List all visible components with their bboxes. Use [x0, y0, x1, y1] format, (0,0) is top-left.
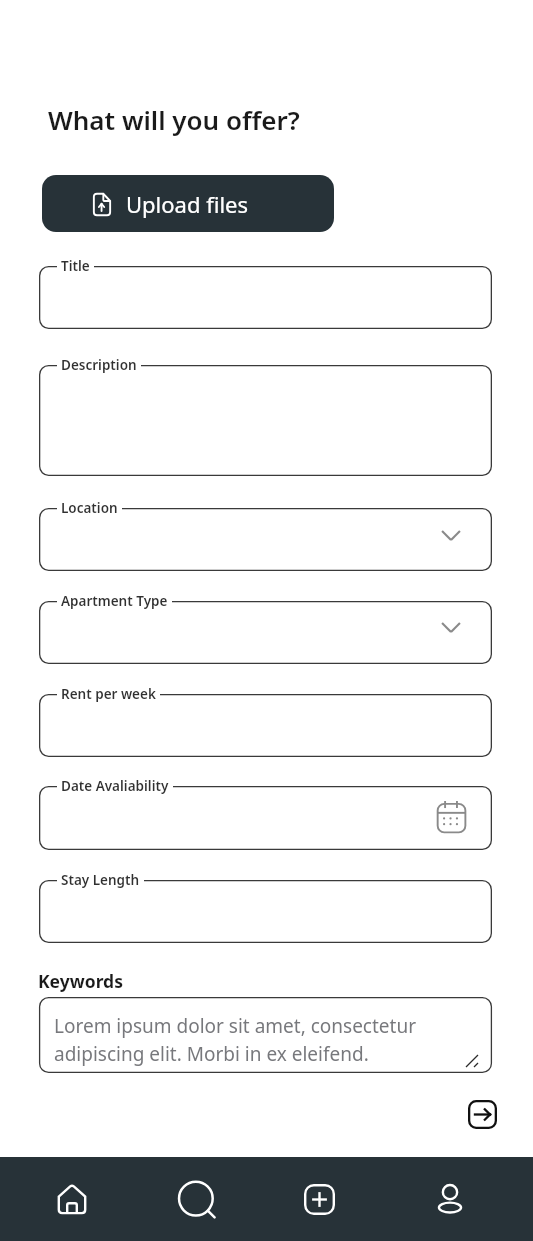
staticText: Upload files	[126, 189, 249, 219]
button[interactable]: Next	[468, 1100, 497, 1129]
button[interactable]: Add	[256, 1157, 382, 1241]
staticText: Apartment Type	[61, 592, 168, 610]
staticText: Lorem ipsum dolor sit amet, consectetur …	[54, 1013, 416, 1066]
staticText: What will you offer?	[48, 102, 300, 137]
staticText: Location	[61, 499, 118, 517]
staticText: Title	[61, 257, 90, 275]
staticText: Rent per week	[61, 685, 156, 703]
button[interactable]: Upload files	[42, 175, 334, 232]
staticText: Date Avaliability	[61, 777, 169, 795]
staticText: Stay Length	[61, 871, 140, 889]
button[interactable]: Profile	[387, 1157, 513, 1241]
button[interactable]: Search	[134, 1157, 260, 1241]
staticText: Description	[61, 356, 137, 374]
button[interactable]: Lorem ipsum dolor sit amet, consectetur …	[39, 997, 492, 1073]
button[interactable]: Home	[9, 1157, 135, 1241]
staticText: Keywords	[38, 969, 123, 993]
